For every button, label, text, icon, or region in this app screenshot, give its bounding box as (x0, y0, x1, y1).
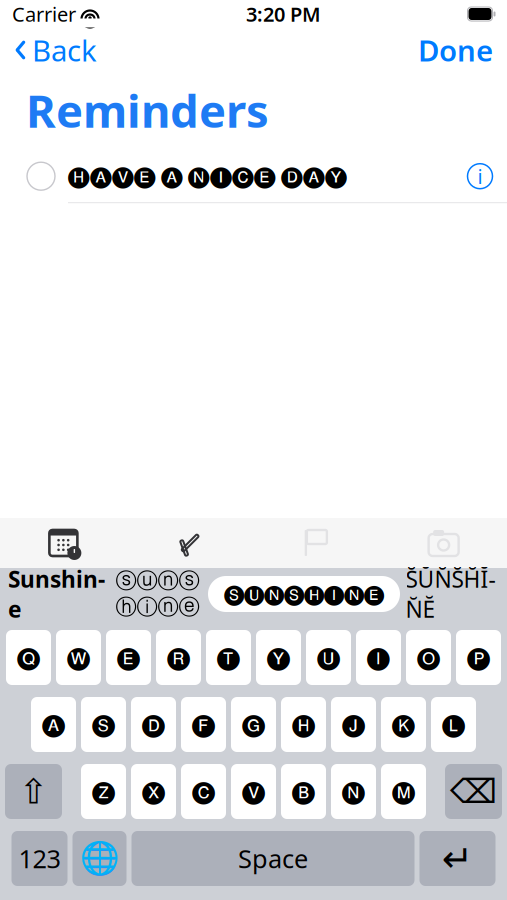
button[interactable]: 🅥 (231, 764, 276, 819)
staticText: 🅘 (367, 646, 390, 668)
staticText: 🅨 (267, 646, 290, 668)
staticText: S̆ŬN̆S̆H̆ĬN̆Ĕ (405, 564, 495, 624)
staticText: 123 (18, 842, 60, 875)
staticText: 🅢🅤🅝🅢🅗🅘🅝🅔 (224, 584, 384, 604)
button[interactable]: 🅔 (106, 630, 151, 685)
button[interactable]: 123 (11, 831, 67, 886)
staticText: 🅐 (42, 713, 65, 735)
staticText: 🅠 (17, 646, 40, 668)
button[interactable]: 🅗 (281, 697, 326, 752)
button[interactable]: 🅞 (406, 630, 451, 685)
staticText: 🅗 (292, 713, 315, 735)
button[interactable]: 🅣 (206, 630, 251, 685)
button[interactable]: 🅑 (281, 764, 326, 819)
button[interactable]: 🅘 (356, 630, 401, 685)
button[interactable]: Camera (380, 522, 507, 564)
button[interactable]: 🅩 (81, 764, 126, 819)
staticText: 🅟 (467, 646, 490, 668)
button[interactable]: 🅠 (6, 630, 51, 685)
button[interactable]: Flag (253, 521, 380, 565)
button[interactable]: Shift (5, 764, 62, 819)
staticText: 🅖 (242, 713, 265, 735)
staticText: i (477, 163, 482, 189)
staticText: 🅚 (392, 713, 415, 735)
staticText: 🅡 (167, 646, 190, 668)
staticText: 🅜 (392, 780, 415, 802)
button[interactable]: 🅧 (131, 764, 176, 819)
button[interactable]: 🅦 (56, 630, 101, 685)
button[interactable]: 🅒 (181, 764, 226, 819)
staticText: 🅥 (242, 780, 265, 802)
button[interactable]: Next keyboard (72, 831, 126, 886)
staticText: 🅗🅐🅥🅔 🅐 🅝🅘🅒🅔 🅓🅐🅨 (68, 166, 347, 187)
button[interactable]: 🅖 (231, 697, 276, 752)
button[interactable]: 🅟 (456, 630, 501, 685)
button[interactable]: Schedule (0, 519, 127, 567)
button[interactable]: Location (127, 520, 254, 566)
staticText: ↵ (442, 837, 473, 880)
staticText: 🅓 (142, 713, 165, 735)
button[interactable]: 🅢🅤🅝🅢🅗🅘🅝🅔 (208, 576, 400, 612)
staticText: 🅔 (117, 646, 140, 668)
staticText: ⌫ (450, 773, 497, 810)
button[interactable]: 🅐 (31, 697, 76, 752)
button[interactable]: 🅙 (331, 697, 376, 752)
button[interactable]: 🅓 (131, 697, 176, 752)
button[interactable]: Mark complete (0, 154, 68, 198)
button[interactable]: 🅕 (181, 697, 226, 752)
staticText: Reminders (26, 80, 269, 140)
button[interactable]: 🅨 (256, 630, 301, 685)
staticText: 🅤 (317, 646, 340, 668)
staticText: Back (32, 30, 97, 69)
staticText: Space (238, 842, 308, 875)
staticText: 🅛 (442, 713, 465, 735)
button[interactable]: Space (131, 831, 414, 886)
button[interactable]: ⓢⓤⓝⓢⓗⓘⓝⓔ (107, 576, 208, 612)
button[interactable]: Delete (445, 764, 502, 819)
button[interactable]: Done (404, 24, 507, 75)
staticText: ⇧ (19, 772, 48, 811)
staticText: 🅧 (142, 780, 165, 802)
staticText (76, 1, 81, 27)
button[interactable]: 🅜 (381, 764, 426, 819)
staticText: 🅢 (92, 713, 115, 735)
staticText: 🅞 (417, 646, 440, 668)
button[interactable]: 🅛 (431, 697, 476, 752)
button[interactable]: Sunshine (6, 576, 107, 612)
staticText: 🅩 (92, 780, 115, 802)
staticText: 🅣 (217, 646, 240, 668)
staticText: 3:20 PM (246, 1, 321, 27)
staticText: 🅦 (67, 646, 90, 668)
staticText: Done (418, 30, 493, 69)
staticText: 🅕 (192, 713, 215, 735)
staticText: 🅙 (342, 713, 365, 735)
staticText: 🅒 (192, 780, 215, 802)
button[interactable]: Return (419, 831, 495, 886)
button[interactable]: Back (0, 24, 111, 75)
staticText: Sunshine (8, 564, 105, 624)
button[interactable]: S̆ŬN̆S̆H̆ĬN̆Ĕ (400, 576, 501, 612)
button[interactable]: 🅝 (331, 764, 376, 819)
button[interactable]: 🅤 (306, 630, 351, 685)
button[interactable]: 🅡 (156, 630, 201, 685)
staticText: 🅑 (292, 780, 315, 802)
button[interactable]: 🅢 (81, 697, 126, 752)
staticText: 🌐 (79, 840, 119, 877)
staticText: ⓢⓤⓝⓢⓗⓘⓝⓔ (115, 568, 199, 620)
button[interactable]: 🅚 (381, 697, 426, 752)
staticText: Carrier (12, 1, 76, 27)
staticText: 🅝 (342, 780, 365, 802)
button[interactable]: Details (453, 155, 507, 197)
